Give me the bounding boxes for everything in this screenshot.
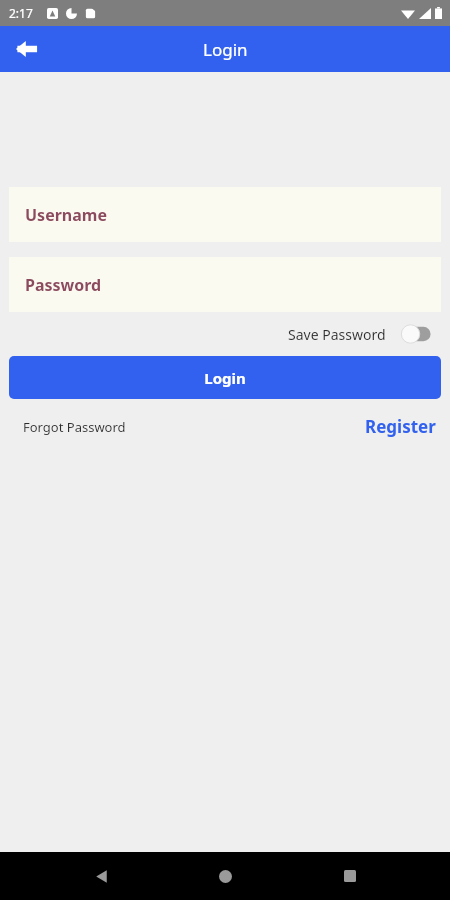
staticText: 2:17: [9, 5, 33, 21]
staticText: Save Password: [288, 325, 386, 344]
button[interactable]: Back: [77, 852, 125, 900]
staticText: Register: [365, 415, 436, 438]
staticText: Password: [25, 274, 102, 296]
button[interactable]: Save Password: [286, 320, 436, 348]
staticText: Forgot Password: [23, 418, 126, 436]
button[interactable]: Forgot Password: [9, 413, 140, 441]
button[interactable]: Password: [9, 257, 441, 312]
button[interactable]: Back: [6, 28, 48, 70]
staticText: Login: [203, 38, 248, 61]
button[interactable]: Login: [9, 356, 441, 399]
button[interactable]: Recent apps: [326, 852, 374, 900]
staticText: Username: [25, 204, 107, 226]
button[interactable]: Register: [360, 410, 441, 443]
staticText: Login: [204, 368, 246, 388]
button[interactable]: Username: [9, 187, 441, 242]
button[interactable]: Home: [201, 852, 249, 900]
